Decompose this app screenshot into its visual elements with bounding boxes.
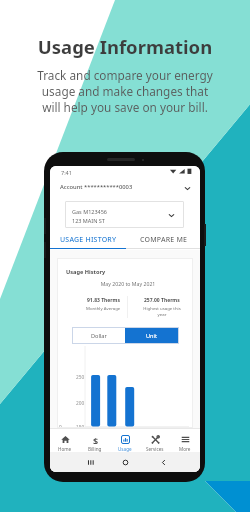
staticText: Gas M123456 (72, 208, 108, 215)
button[interactable]: Home (50, 428, 80, 452)
staticText: Usage (118, 446, 132, 452)
button[interactable]: Gas M123456 (65, 201, 184, 228)
staticText: Highest usage this year (142, 305, 182, 317)
staticText: 91.83 Therms (87, 297, 120, 304)
button[interactable]: More (170, 428, 200, 452)
button[interactable]: Recents (78, 452, 102, 472)
staticText: USAGE HISTORY (60, 235, 117, 245)
staticText: 0 (59, 424, 62, 431)
staticText: Usage Information (0, 34, 250, 59)
staticText: 250 (76, 374, 85, 381)
staticText: Unit (146, 332, 158, 340)
staticText: Dollar (91, 332, 107, 340)
button[interactable]: Home (113, 452, 137, 472)
button[interactable]: Usage (110, 428, 140, 452)
button[interactable]: COMPARE ME (126, 232, 200, 248)
staticText: $ (93, 435, 99, 444)
staticText: COMPARE ME (140, 235, 188, 245)
staticText: 150 (76, 424, 85, 431)
button[interactable]: $ (80, 428, 110, 452)
button[interactable]: Back (151, 452, 175, 472)
staticText: Track and compare your energy usage and … (34, 67, 216, 115)
staticText: 200 (76, 400, 85, 407)
button[interactable]: Services (140, 428, 170, 452)
button[interactable]: USAGE HISTORY (50, 232, 126, 248)
staticText: Services (146, 446, 164, 452)
staticText: 257.00 Therms (144, 297, 180, 304)
staticText: Billing (88, 446, 102, 452)
staticText: More (179, 446, 191, 452)
button[interactable]: Unit (125, 327, 179, 344)
button[interactable]: Dollar (72, 327, 125, 344)
staticText: 123 MAIN ST (72, 217, 105, 224)
staticText: Account ***********0003 (60, 183, 133, 191)
staticText: Monthly Average (86, 305, 121, 311)
staticText: 7:41 (61, 169, 72, 176)
staticText: Usage History (66, 268, 106, 276)
staticText: Home (58, 446, 72, 452)
button[interactable]: Select account (181, 182, 193, 194)
staticText: May 2020 to May 2021 (60, 280, 196, 287)
